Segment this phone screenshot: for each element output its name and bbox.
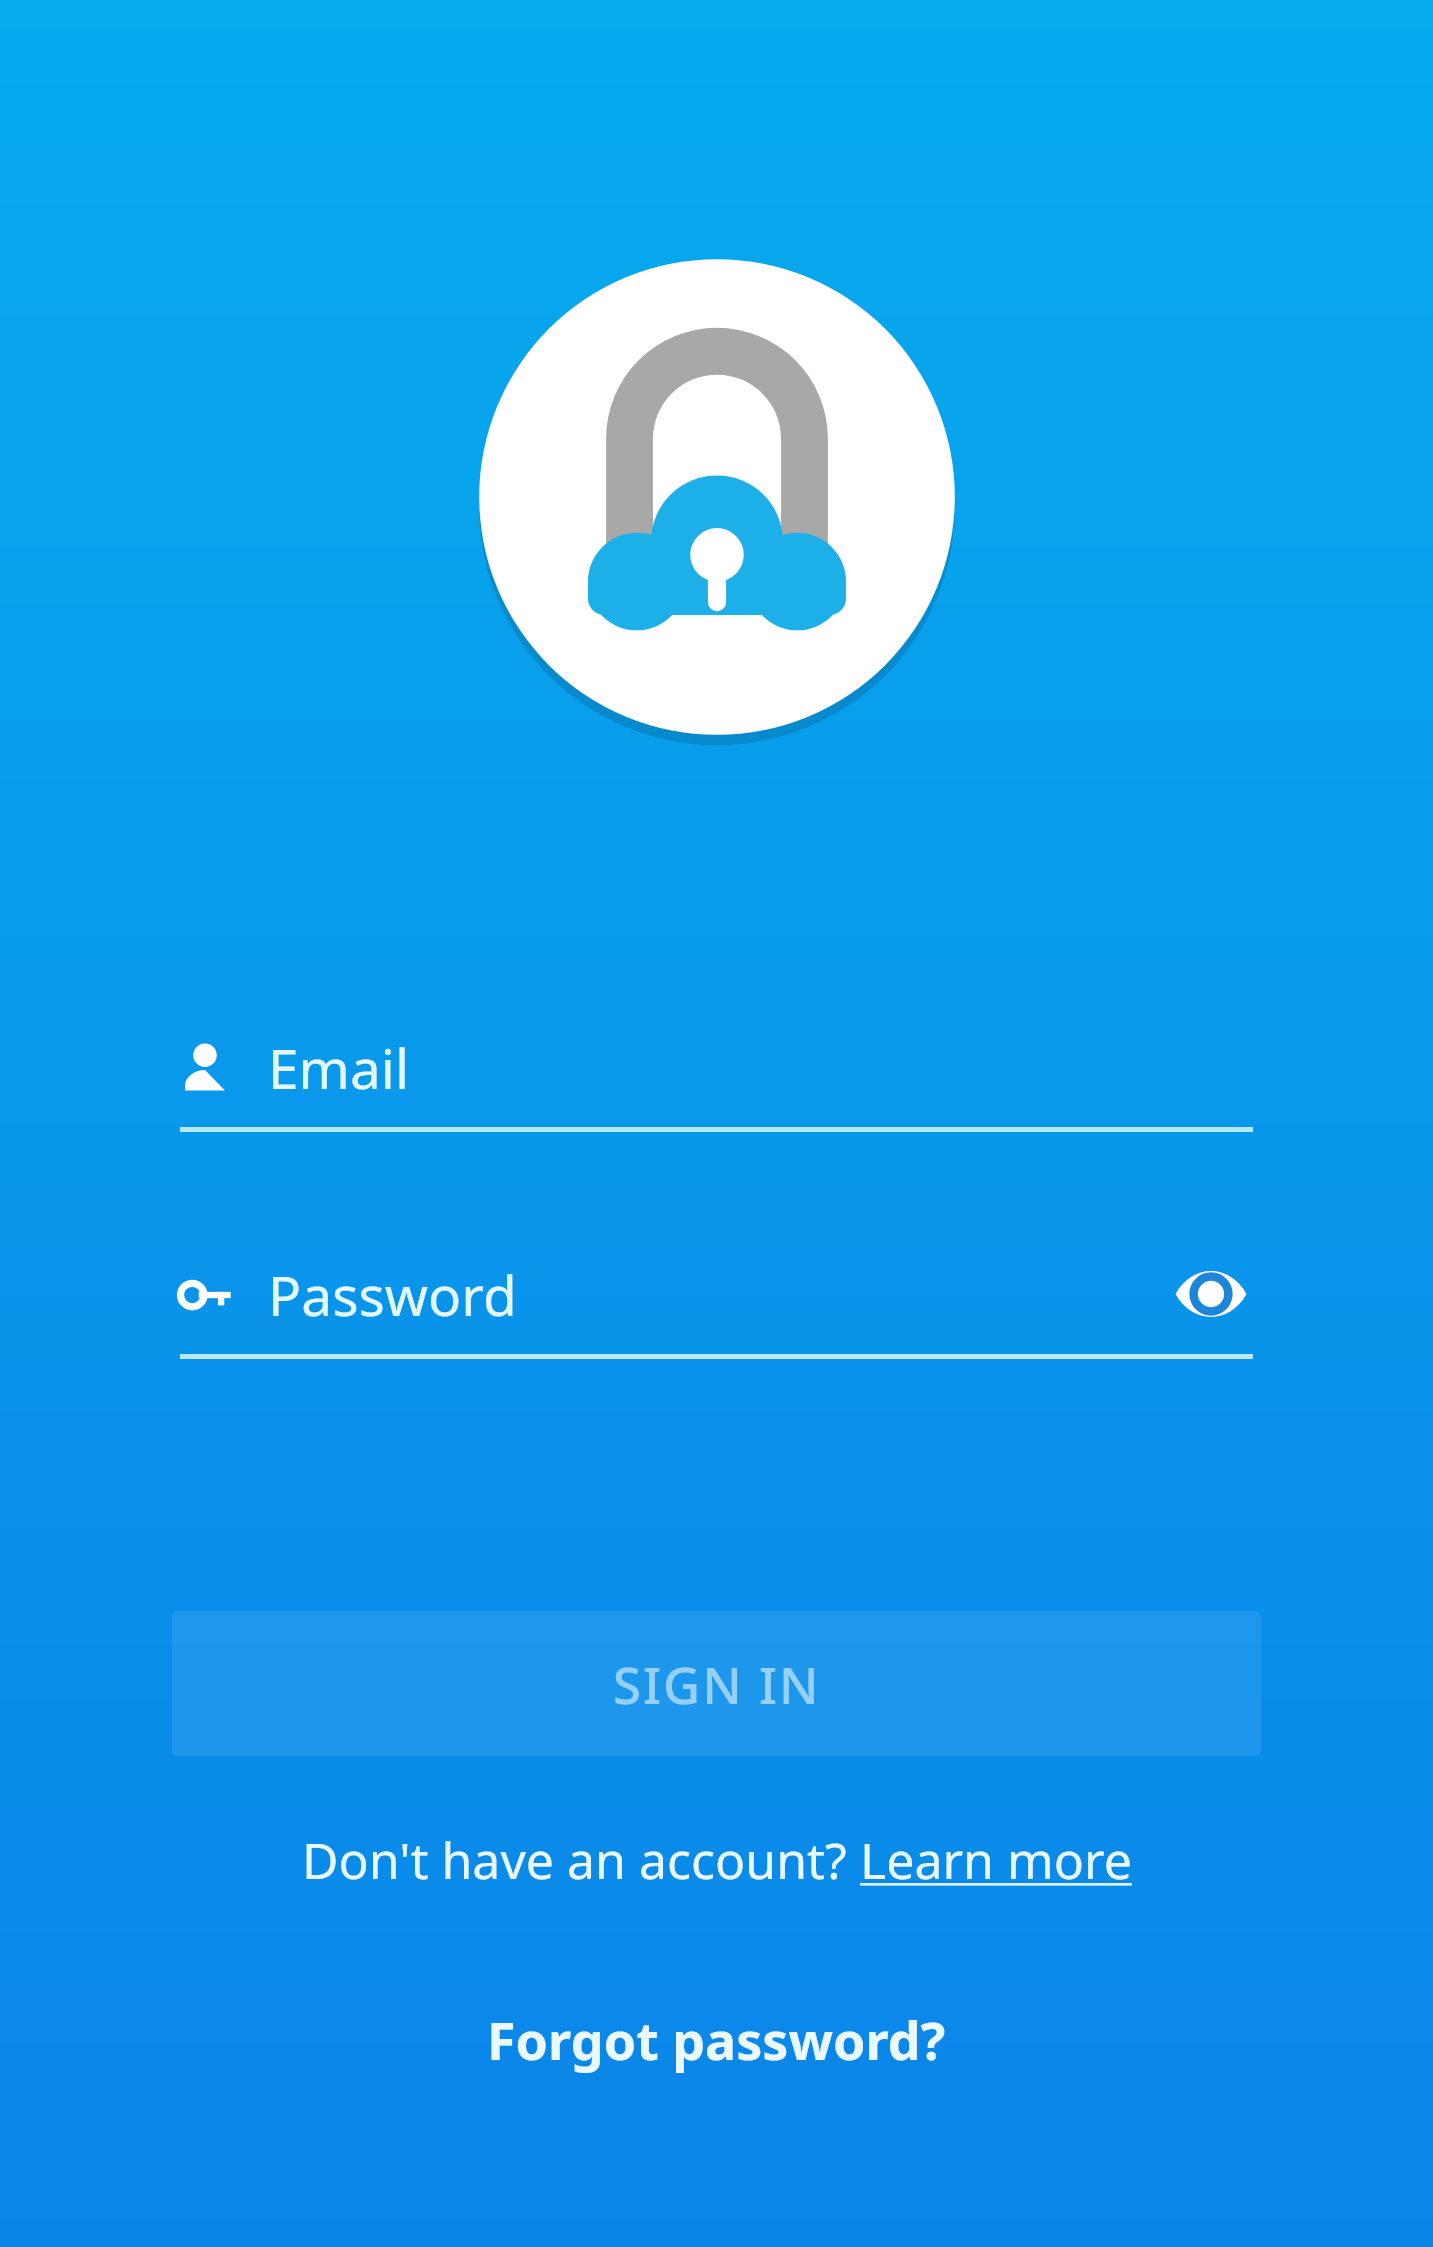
button[interactable]: Don't have an account?	[278, 1816, 1156, 1904]
staticText: Don't have an account?	[302, 1826, 860, 1894]
staticText: SIGN IN	[613, 1649, 821, 1718]
staticText: Learn more	[860, 1826, 1132, 1894]
staticText: Forgot password?	[487, 2004, 946, 2075]
button[interactable]: Password	[180, 1248, 1253, 1359]
button[interactable]: Forgot password?	[457, 1992, 976, 2087]
button[interactable]: Email	[180, 1021, 1253, 1132]
button[interactable]: SIGN IN	[172, 1611, 1261, 1756]
staticText: Password	[268, 1257, 517, 1332]
button[interactable]: Show password	[1169, 1252, 1253, 1336]
staticText: Email	[268, 1030, 410, 1105]
